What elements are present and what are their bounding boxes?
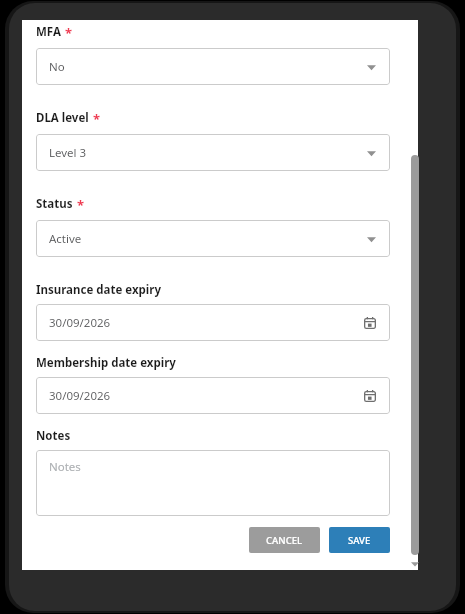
staticText: No (49, 59, 65, 75)
staticText: * (93, 110, 101, 128)
other: Open No dropdown (364, 60, 378, 74)
button[interactable]: Notes (36, 450, 390, 516)
button[interactable]: 30/09/2026 (36, 304, 390, 341)
staticText: Insurance date expiry (36, 282, 161, 298)
button[interactable]: 30/09/2026 (36, 377, 390, 414)
button[interactable]: SAVE (329, 527, 390, 553)
button[interactable]: Choose date (361, 387, 379, 405)
staticText: Notes (36, 428, 71, 444)
other: Scroll down (411, 560, 419, 568)
staticText: 30/09/2026 (49, 388, 111, 404)
button[interactable]: Level 3 (36, 134, 390, 171)
staticText: Membership date expiry (36, 355, 176, 371)
button[interactable]: Choose date (361, 314, 379, 332)
other: Open Level 3 dropdown (364, 146, 378, 160)
staticText: CANCEL (266, 534, 303, 547)
staticText: 30/09/2026 (49, 315, 111, 331)
button[interactable]: CANCEL (249, 527, 320, 553)
staticText: MFA (36, 24, 61, 40)
button[interactable]: Active (36, 220, 390, 257)
staticText: * (65, 24, 73, 42)
staticText: * (77, 196, 85, 214)
staticText: Active (49, 231, 82, 247)
staticText: DLA level (36, 110, 89, 126)
staticText: Notes (49, 459, 81, 475)
other: Open Active dropdown (364, 232, 378, 246)
staticText: Status (36, 196, 73, 212)
staticText: Level 3 (49, 145, 87, 161)
staticText: SAVE (348, 534, 371, 547)
button[interactable]: No (36, 48, 390, 85)
